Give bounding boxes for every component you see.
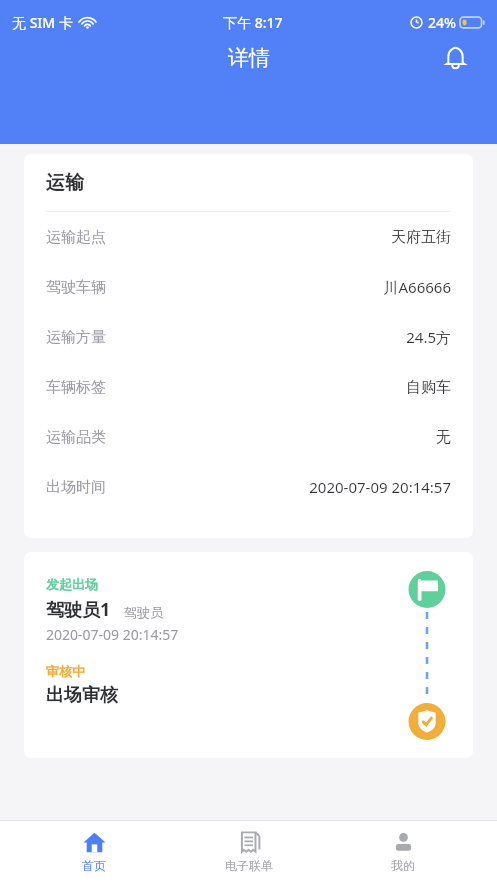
staticText: 无	[436, 428, 451, 447]
staticText: 运输品类	[46, 428, 106, 447]
staticText: 运输起点	[46, 228, 106, 247]
staticText: 24%	[428, 13, 456, 32]
staticText: 发起出场	[46, 576, 98, 592]
staticText: 2020-07-09 20:14:57	[46, 625, 179, 644]
staticText: 车辆标签	[46, 378, 106, 397]
button[interactable]: Notifications	[435, 44, 475, 72]
staticText: 下午 8:17	[223, 13, 283, 32]
staticText: 电子联单	[225, 858, 273, 873]
staticText: 审核中	[46, 663, 85, 679]
staticText: 运输方量	[46, 328, 106, 347]
button[interactable]: 首页	[34, 821, 154, 883]
staticText: 驾驶员	[124, 604, 163, 620]
staticText: 24.5方	[406, 327, 451, 347]
staticText: 运输	[46, 171, 84, 195]
staticText: 详情	[228, 45, 270, 71]
staticText: 2020-07-09 20:14:57	[309, 477, 451, 497]
staticText: 川A66666	[383, 277, 451, 297]
staticText: 自购车	[406, 378, 451, 397]
staticText: 出场时间	[46, 478, 106, 497]
button[interactable]: 电子联单	[189, 821, 309, 883]
staticText: 驾驶员1	[46, 597, 111, 622]
button[interactable]: 我的	[343, 821, 463, 883]
staticText: 天府五街	[391, 228, 451, 247]
staticText: 无 SIM 卡	[12, 13, 73, 32]
staticText: 首页	[82, 858, 106, 873]
staticText: 驾驶车辆	[46, 278, 106, 297]
staticText: 我的	[391, 858, 415, 873]
staticText: 出场审核	[46, 684, 118, 707]
